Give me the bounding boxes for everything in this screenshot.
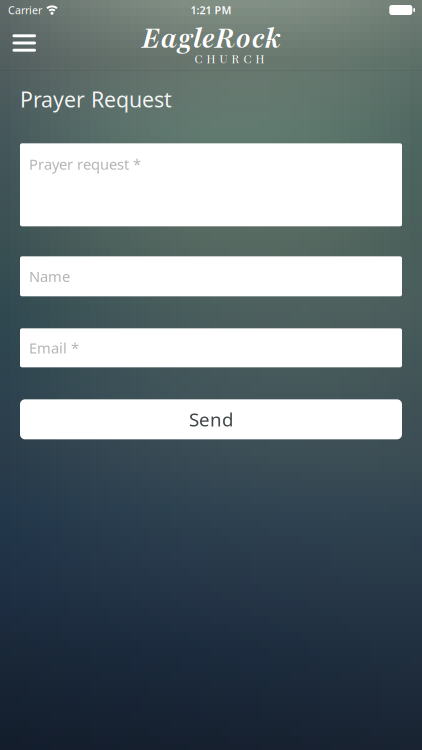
- staticText: EagleRock: [141, 20, 280, 57]
- button[interactable]: Prayer request: [20, 143, 402, 226]
- staticText: Name: [29, 267, 70, 286]
- staticText: Prayer Request: [20, 85, 172, 113]
- staticText: CHURCH: [194, 50, 264, 66]
- button[interactable]: Menu: [0, 28, 36, 62]
- staticText: 1:21 PM: [190, 3, 231, 17]
- staticText: Carrier: [8, 3, 42, 17]
- button[interactable]: Email *: [20, 328, 402, 367]
- staticText: Email *: [29, 338, 79, 358]
- button[interactable]: Send: [20, 399, 402, 439]
- staticText: Prayer request *: [29, 154, 141, 174]
- staticText: Send: [189, 407, 233, 432]
- button[interactable]: Name: [20, 256, 402, 296]
